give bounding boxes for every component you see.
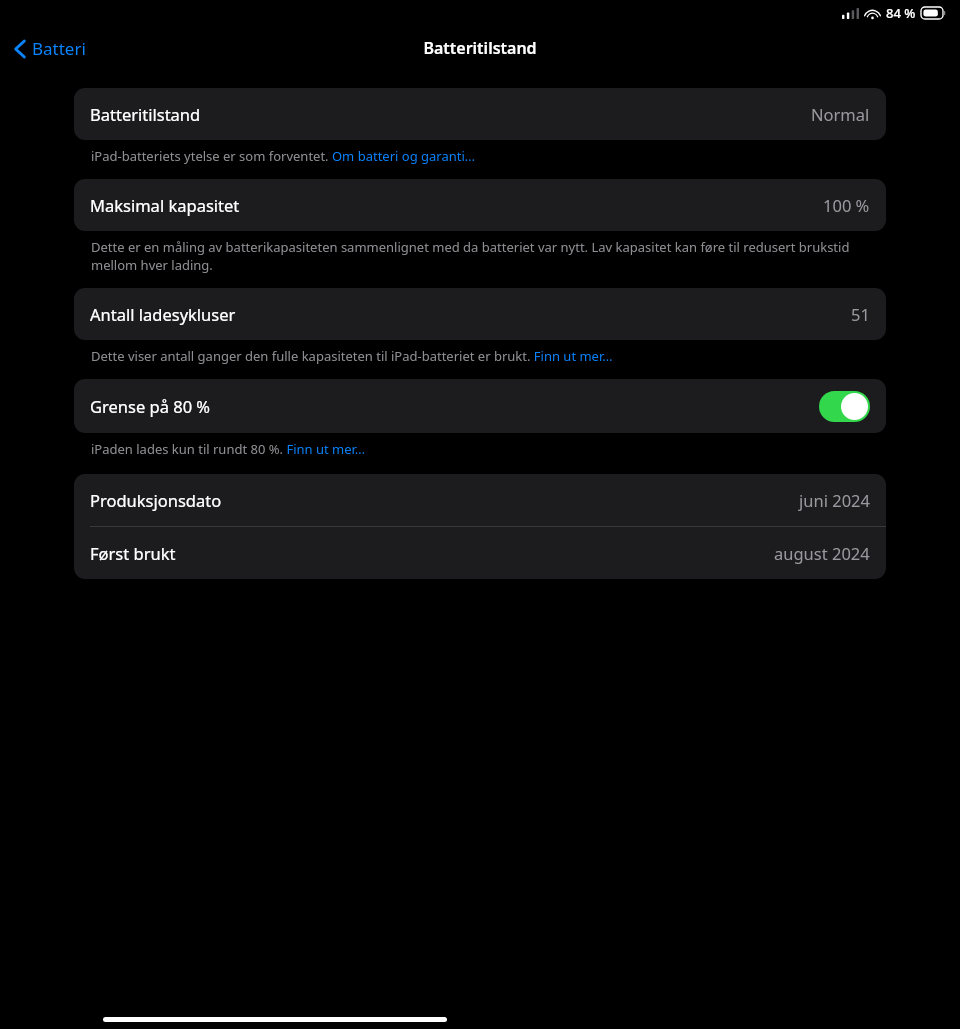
staticText: august 2024	[774, 542, 870, 564]
button[interactable]: Maksimal kapasitet	[74, 179, 886, 231]
staticText: Maksimal kapasitet	[90, 194, 240, 216]
staticText: iPad-batteriets ytelse er som forventet.…	[91, 147, 862, 165]
button[interactable]: Antall ladesykluser	[74, 288, 886, 340]
staticText: 84 %	[886, 4, 916, 22]
staticText: Dette viser antall ganger den fulle kapa…	[91, 347, 862, 365]
button[interactable]: Produksjonsdato	[74, 474, 886, 526]
staticText: Normal	[811, 103, 870, 125]
button[interactable]: Batteri	[8, 33, 92, 64]
button[interactable]: Grense på 80 prosent bryter	[819, 391, 870, 422]
staticText: Batteri	[32, 37, 86, 60]
staticText: juni 2024	[799, 489, 870, 511]
staticText: Produksjonsdato	[90, 489, 222, 511]
staticText: Først brukt	[90, 542, 176, 564]
staticText: Dette er en måling av batterikapasiteten…	[91, 238, 862, 274]
staticText: Batteritilstand	[90, 103, 201, 125]
staticText: Grense på 80 %	[90, 395, 211, 417]
staticText: Batteritilstand	[423, 37, 537, 59]
staticText: 100 %	[823, 194, 870, 216]
staticText: 51	[851, 303, 870, 325]
staticText: iPaden lades kun til rundt 80 %. Finn ut…	[91, 440, 862, 458]
button[interactable]: Først brukt	[74, 527, 886, 579]
staticText: Antall ladesykluser	[90, 303, 236, 325]
button[interactable]: Batteritilstand	[74, 88, 886, 140]
button[interactable]: Grense på 80 %	[74, 379, 886, 433]
